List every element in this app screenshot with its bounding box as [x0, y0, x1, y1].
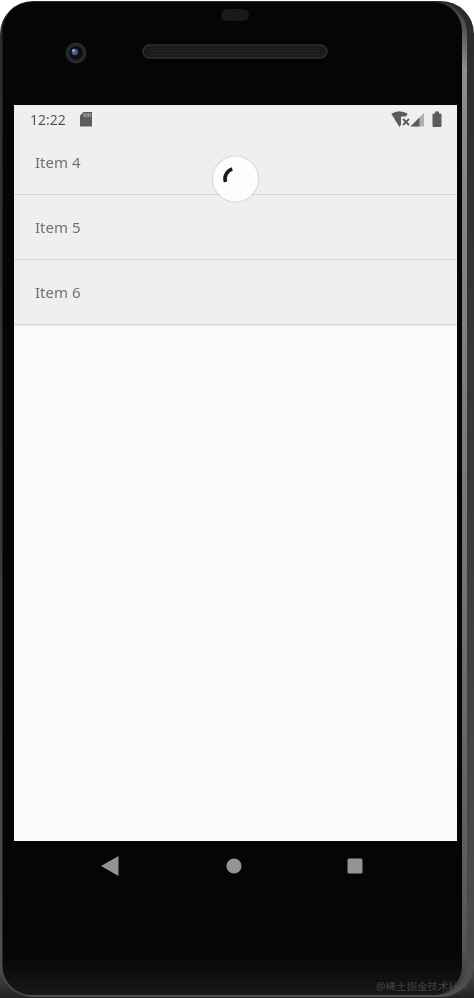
button[interactable] — [86, 842, 134, 890]
button[interactable]: Item 6 — [14, 260, 457, 324]
staticText: Item 6 — [35, 282, 81, 302]
button[interactable] — [210, 842, 258, 890]
staticText: Item 4 — [35, 152, 81, 172]
button[interactable]: Item 5 — [14, 195, 457, 259]
staticText: 12:22 — [30, 110, 66, 129]
button[interactable] — [331, 842, 379, 890]
staticText: Item 5 — [35, 217, 81, 237]
staticText: @稀土掘金技术社区 — [376, 979, 470, 993]
button[interactable]: Item 4 — [14, 130, 457, 194]
